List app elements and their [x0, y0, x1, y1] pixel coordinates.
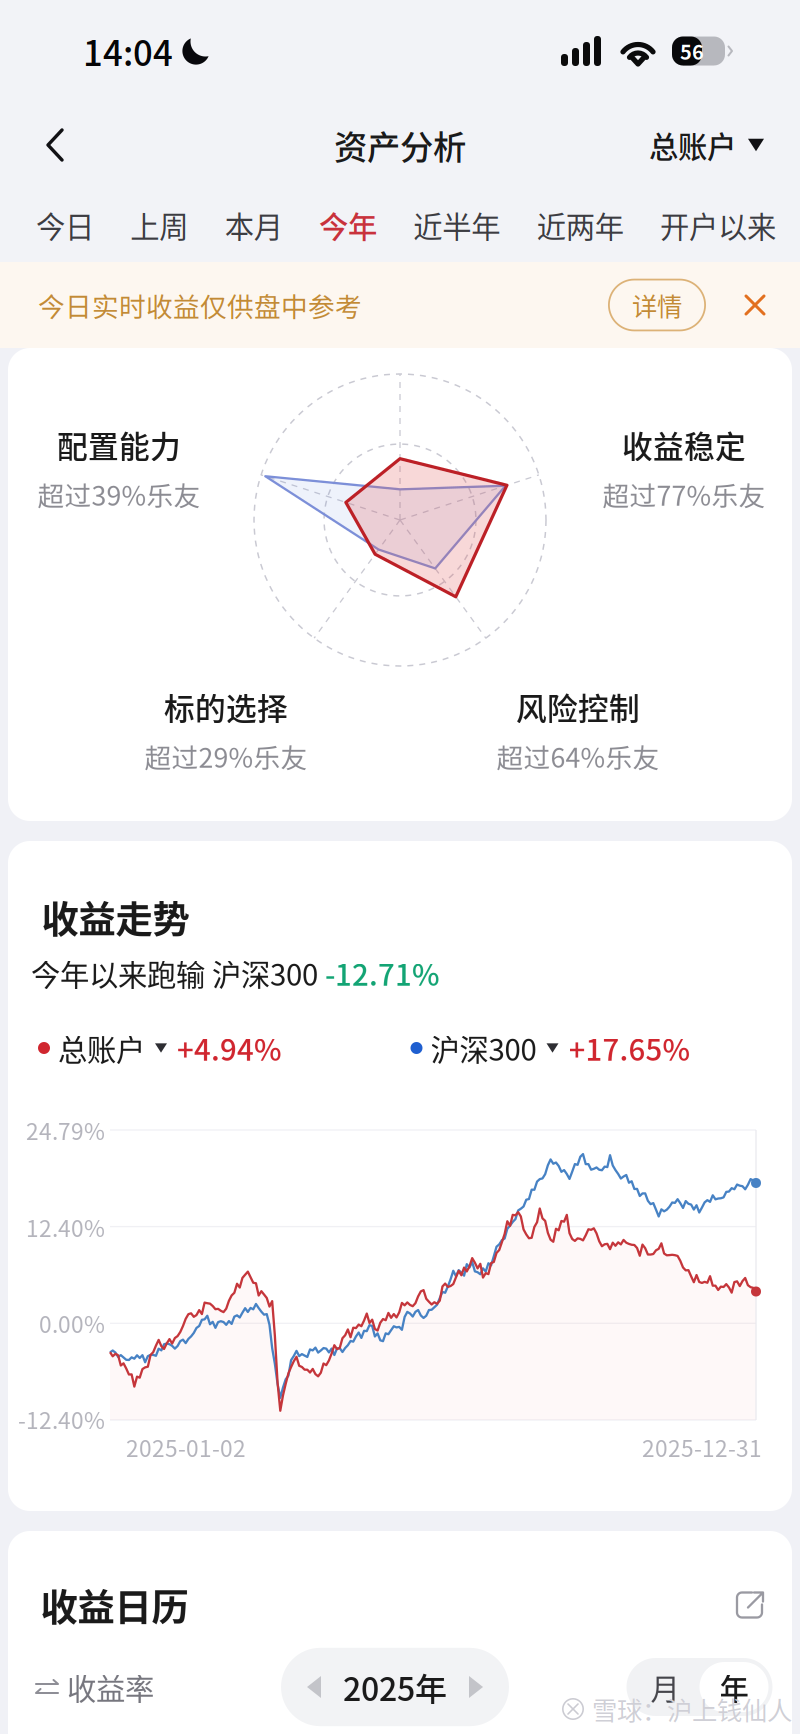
- button[interactable]: 今年: [319, 196, 377, 254]
- button[interactable]: 年: [699, 1662, 768, 1712]
- button[interactable]: 近两年: [537, 196, 624, 254]
- staticText: 0.00%: [39, 1307, 105, 1339]
- button[interactable]: 详情: [608, 279, 706, 331]
- button[interactable]: 收益率: [36, 1652, 154, 1722]
- staticText: +4.94%: [177, 1027, 282, 1069]
- button[interactable]: 今日: [36, 196, 94, 254]
- staticText: 今年以来跑输 沪深300: [31, 952, 325, 994]
- button[interactable]: 开户以来: [660, 196, 776, 254]
- button[interactable]: 月: [630, 1662, 699, 1712]
- staticText: 今年: [319, 204, 377, 246]
- staticText: 详情: [632, 287, 682, 323]
- staticText: 超过29%乐友: [144, 737, 307, 775]
- button[interactable]: 关闭: [706, 280, 766, 330]
- staticText: 沪深300: [430, 1027, 536, 1069]
- button[interactable]: 2025年: [281, 1648, 509, 1726]
- button[interactable]: 本月: [225, 196, 283, 254]
- button[interactable]: 总账户: [38, 1027, 282, 1069]
- staticText: 2025-12-31: [642, 1431, 762, 1463]
- staticText: 资产分析: [334, 121, 466, 169]
- staticText: 近半年: [413, 204, 500, 246]
- staticText: -12.71%: [325, 952, 440, 994]
- staticText: 月: [650, 1666, 679, 1708]
- staticText: 12.40%: [26, 1211, 105, 1243]
- staticText: 上周: [130, 204, 188, 246]
- staticText: 本月: [225, 204, 283, 246]
- staticText: 配置能力: [57, 422, 181, 467]
- button[interactable]: 展开: [721, 1576, 779, 1633]
- button[interactable]: 总账户: [635, 110, 778, 180]
- staticText: 年: [719, 1666, 748, 1708]
- staticText: 14:04: [83, 26, 173, 76]
- staticText: 收益日历: [40, 1578, 188, 1632]
- staticText: 2025-01-02: [126, 1431, 246, 1463]
- staticText: 24.79%: [26, 1114, 105, 1146]
- staticText: 收益走势: [41, 890, 189, 944]
- staticText: 56: [680, 36, 704, 65]
- button[interactable]: 返回: [22, 113, 88, 177]
- staticText: 今日: [36, 204, 94, 246]
- staticText: 标的选择: [164, 684, 288, 729]
- button[interactable]: 沪深300: [410, 1027, 690, 1069]
- staticText: 雪球：沪上钱仙人: [592, 1691, 792, 1727]
- staticText: 2025年: [343, 1664, 447, 1710]
- staticText: 今日实时收益仅供盘中参考: [38, 286, 362, 324]
- staticText: +17.65%: [568, 1027, 690, 1069]
- staticText: 总账户: [58, 1027, 145, 1069]
- staticText: 超过64%乐友: [496, 737, 659, 775]
- staticText: 风险控制: [516, 684, 640, 729]
- staticText: 超过39%乐友: [37, 475, 200, 513]
- staticText: 收益稳定: [622, 422, 746, 467]
- button[interactable]: 近半年: [413, 196, 500, 254]
- staticText: 近两年: [537, 204, 624, 246]
- staticText: 总账户: [649, 124, 736, 166]
- staticText: 超过77%乐友: [602, 475, 765, 513]
- button[interactable]: 上周: [130, 196, 188, 254]
- staticText: 开户以来: [660, 204, 776, 246]
- staticText: -12.40%: [18, 1403, 105, 1435]
- staticText: 收益率: [67, 1666, 154, 1708]
